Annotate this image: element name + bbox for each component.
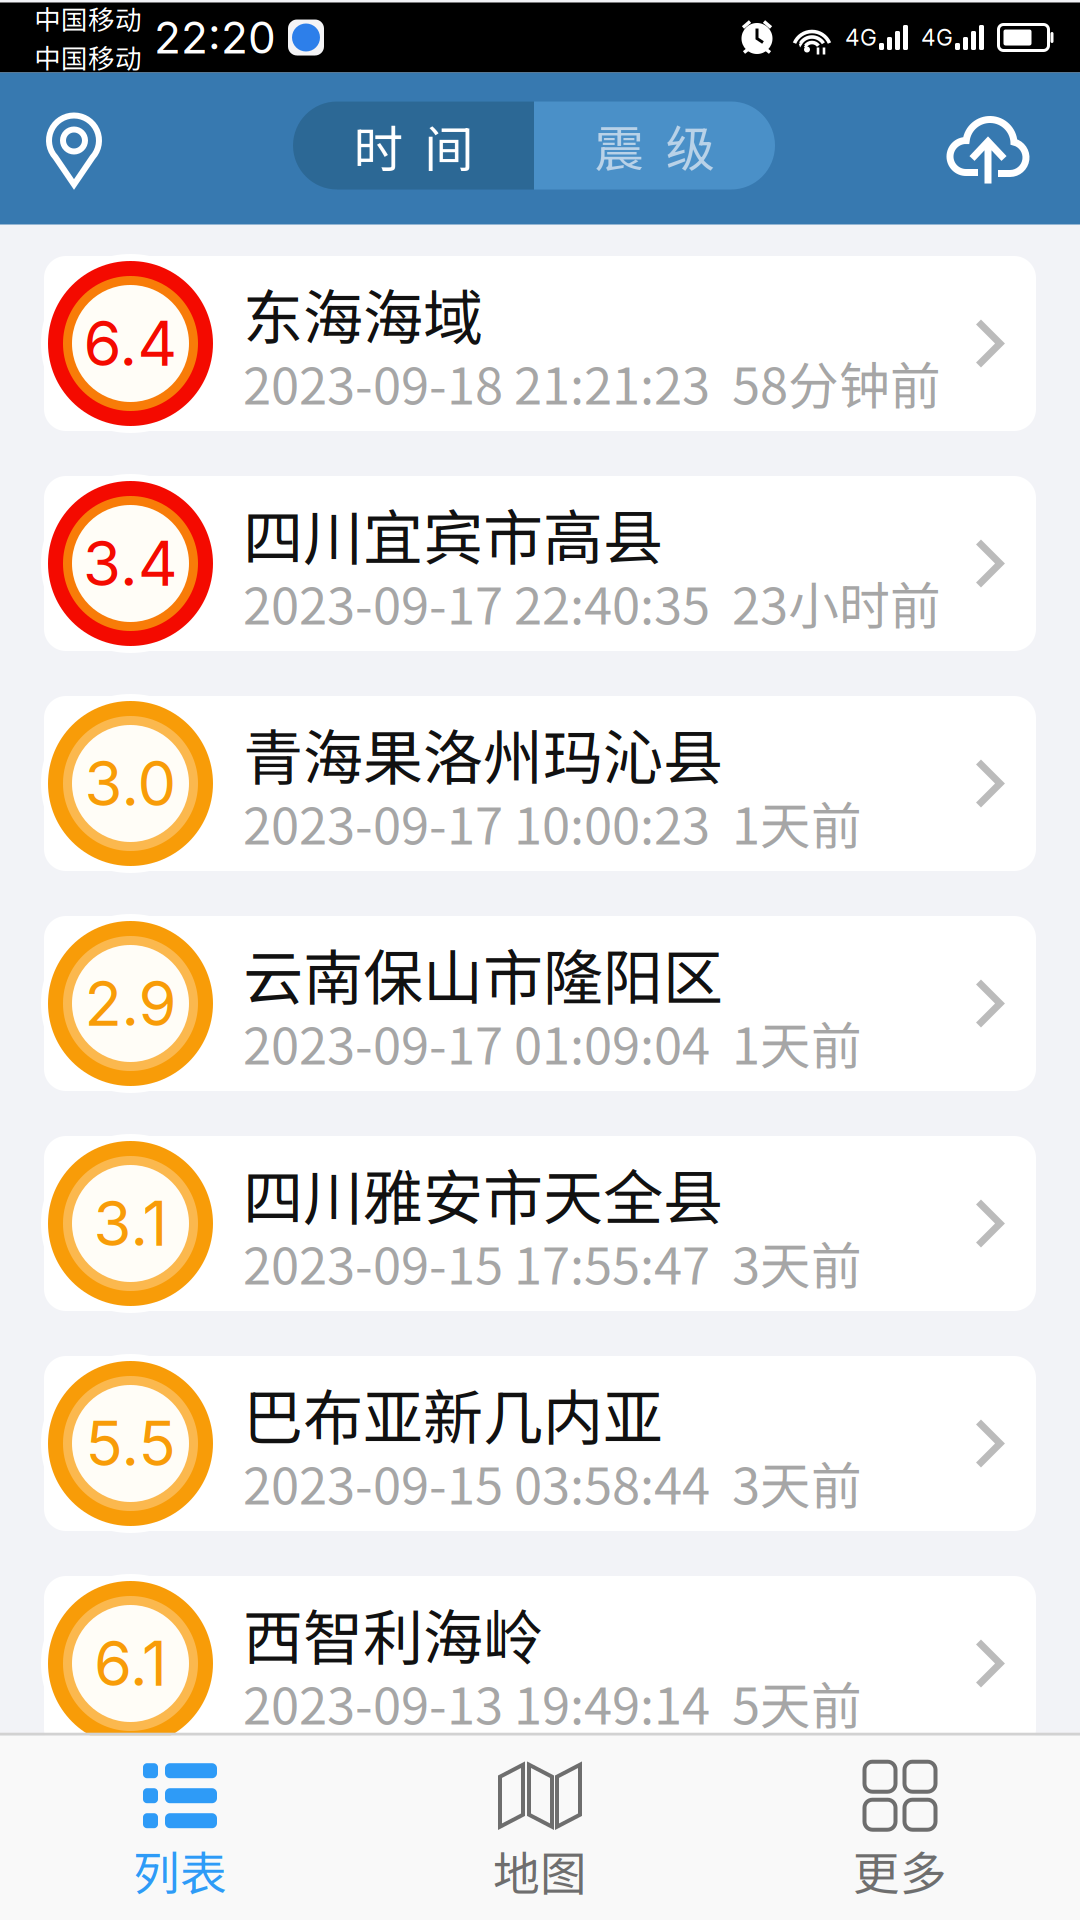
button[interactable]: Upload [940,110,1080,186]
staticText: 22:20 [154,11,276,64]
staticText: 4G [921,24,953,51]
staticText: 更多 [853,1837,947,1904]
button[interactable]: 3.1 [44,1136,1036,1311]
staticText: 4G [845,24,877,51]
staticText: 青海果洛州玛沁县 [243,710,723,797]
staticText: 2023-09-17 22:40:35 23小时前 [243,566,941,639]
button[interactable]: 2.9 [44,916,1036,1091]
staticText: 震 级 [594,110,714,181]
staticText: 云南保山市隆阳区 [243,930,723,1017]
staticText: 6.4 [83,306,177,381]
staticText: 地图 [493,1837,587,1904]
button[interactable]: 地图 [360,1736,720,1920]
staticText: 时 间 [353,110,473,181]
staticText: 3.1 [93,1186,167,1261]
staticText: 中国移动 [34,0,142,37]
staticText: 2023-09-17 01:09:04 1天前 [243,1006,862,1079]
button[interactable]: 6.4 [44,256,1036,431]
staticText: 5.5 [85,1406,175,1481]
staticText: 东海海域 [243,270,483,357]
staticText: 四川雅安市天全县 [243,1150,723,1237]
staticText: 中国移动 [34,37,142,76]
staticText: 6.1 [94,1626,167,1701]
button[interactable]: 震 级 [534,101,775,189]
staticText: 巴布亚新几内亚 [243,1370,663,1457]
button[interactable]: 时 间 [293,101,534,189]
button[interactable]: 列表 [0,1736,360,1920]
staticText: 3.4 [83,526,178,601]
button[interactable]: 5.5 [44,1356,1036,1531]
staticText: 2023-09-13 19:49:14 5天前 [243,1666,862,1739]
button[interactable]: 6.1 [44,1576,1036,1751]
staticText: 2.9 [84,966,176,1041]
staticText: 四川宜宾市高县 [243,490,663,577]
staticText: 2023-09-15 17:55:47 3天前 [243,1226,862,1299]
staticText: 2023-09-18 21:21:23 58分钟前 [243,346,941,419]
button[interactable]: 更多 [720,1736,1080,1920]
staticText: 列表 [133,1837,227,1904]
button[interactable]: Location [0,110,128,186]
staticText: 2023-09-15 03:58:44 3天前 [243,1446,862,1519]
staticText: 西智利海岭 [243,1590,543,1677]
staticText: 3.0 [84,746,176,821]
button[interactable]: 3.0 [44,696,1036,871]
staticText: 2023-09-17 10:00:23 1天前 [243,786,862,859]
button[interactable]: 3.4 [44,476,1036,651]
